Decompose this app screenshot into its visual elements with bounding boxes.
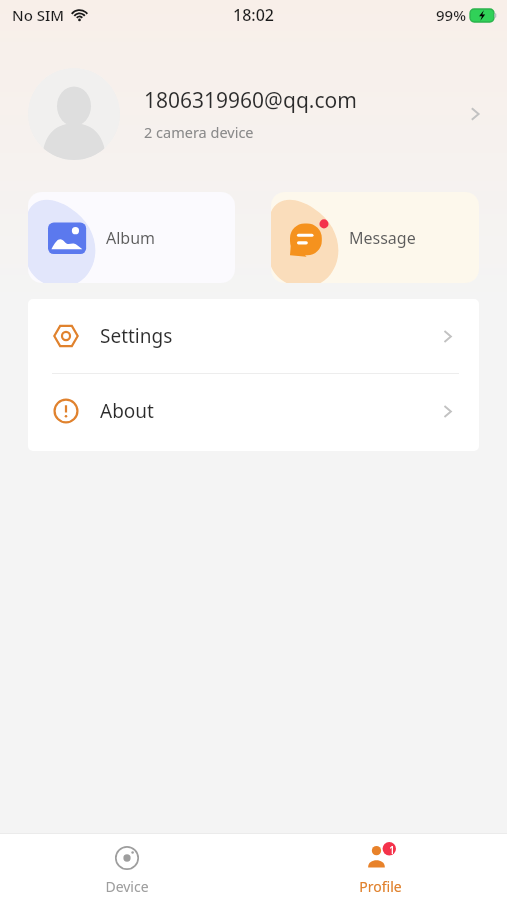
staticText: 2 camera device	[144, 122, 254, 142]
button[interactable]: Device	[0, 834, 253, 900]
button[interactable]: About	[28, 374, 479, 448]
button[interactable]: Album	[28, 192, 235, 283]
button[interactable]: Settings	[28, 299, 479, 373]
staticText: About	[100, 398, 438, 424]
staticText: Album	[106, 227, 156, 249]
staticText: Profile	[359, 877, 402, 896]
staticText: Device	[105, 877, 149, 896]
button[interactable]: 1806319960@qq.com	[0, 68, 507, 160]
staticText: Settings	[100, 323, 438, 349]
staticText: 18:02	[233, 4, 274, 26]
staticText: 1	[389, 843, 395, 857]
button[interactable]: Profile	[253, 834, 507, 900]
staticText: 99%	[436, 5, 466, 25]
staticText: Message	[349, 227, 416, 249]
staticText: No SIM	[12, 5, 65, 25]
staticText: 1806319960@qq.com	[144, 86, 357, 115]
button[interactable]: Message	[271, 192, 479, 283]
other: Device	[113, 844, 141, 872]
other: Profile	[364, 842, 396, 874]
